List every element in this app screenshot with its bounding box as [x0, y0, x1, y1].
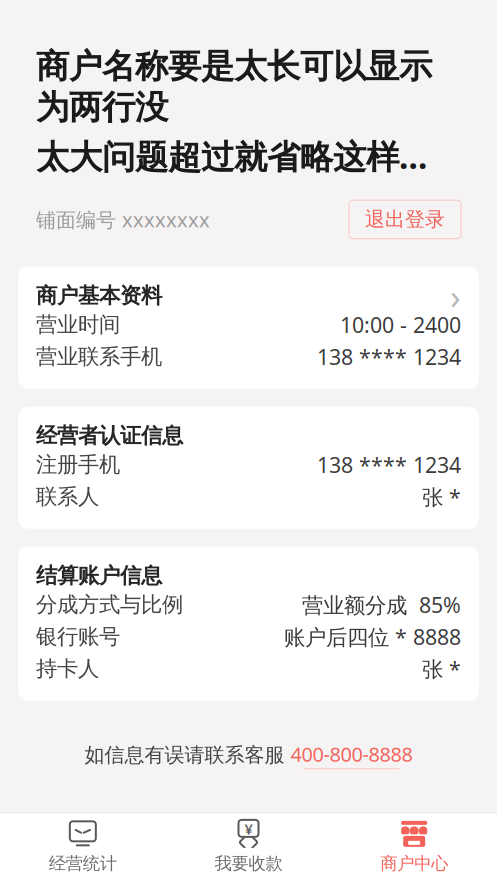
staticText: 商户名称要是太长可以显示为两行没 — [36, 46, 432, 128]
staticText: 138 **** 1234 — [317, 342, 461, 371]
staticText: 如信息有误请联系客服 — [84, 743, 290, 767]
staticText: 138 **** 1234 — [317, 450, 461, 479]
button[interactable]: 退出登录 — [349, 200, 461, 239]
staticText: 退出登录 — [365, 207, 445, 232]
staticText: 经营者认证信息 — [36, 423, 183, 449]
staticText: 结算账户信息 — [36, 563, 162, 589]
button[interactable]: ¥ — [166, 812, 331, 883]
staticText: 银行账号 — [36, 624, 120, 650]
staticText: 10:00 - 2400 — [340, 310, 461, 339]
staticText: 太大问题超过就省略这样… — [36, 134, 428, 178]
staticText: 商户中心 — [380, 853, 448, 874]
staticText: 营业时间 — [36, 312, 120, 338]
staticText: 联系人 — [36, 484, 99, 510]
staticText: 铺面编号 xxxxxxxx — [36, 206, 210, 233]
staticText: 商户基本资料 — [36, 283, 162, 309]
staticText: 营业联系手机 — [36, 344, 162, 370]
staticText: 营业额分成 85% — [302, 590, 461, 619]
staticText: 分成方式与比例 — [36, 592, 183, 618]
button[interactable]: 经营统计 — [0, 812, 166, 883]
staticText: ¥ — [244, 819, 252, 839]
staticText: 我要收款 — [214, 853, 282, 874]
button[interactable]: 商户基本资料 — [18, 267, 479, 389]
button[interactable]: 商户中心 — [331, 812, 497, 883]
staticText: › — [450, 273, 461, 319]
staticText: 持卡人 — [36, 656, 99, 682]
staticText: 注册手机 — [36, 452, 120, 478]
staticText: 400-800-8888 — [290, 741, 412, 767]
staticText: 张 * — [422, 654, 461, 683]
staticText: 张 * — [422, 482, 461, 511]
staticText: 账户后四位 * 8888 — [284, 622, 461, 651]
staticText: 经营统计 — [49, 853, 117, 874]
button[interactable]: 400-800-8888 — [290, 741, 412, 769]
